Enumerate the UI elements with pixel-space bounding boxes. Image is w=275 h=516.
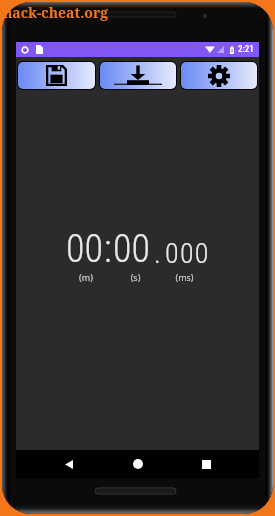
staticText: (s) (111, 271, 160, 283)
staticText: 000 (165, 237, 210, 270)
staticText: 00 (66, 227, 103, 272)
staticText: (m) (61, 271, 111, 283)
staticText: . (154, 237, 162, 270)
staticText: hack-cheat.org (3, 3, 109, 22)
button[interactable]: Load (100, 62, 176, 89)
staticText: 00 (113, 227, 150, 272)
staticText: 2:21 (238, 44, 254, 55)
button[interactable]: Recents (183, 450, 230, 478)
button[interactable]: Settings (181, 62, 257, 89)
staticText: (ms) (160, 271, 209, 283)
button[interactable]: Back (45, 450, 92, 478)
button[interactable]: Save (18, 62, 95, 89)
button[interactable]: Home (114, 450, 161, 478)
staticText: : (104, 227, 112, 272)
